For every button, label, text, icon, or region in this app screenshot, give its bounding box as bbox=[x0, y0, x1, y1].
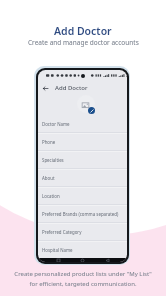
staticText: Preferred Category bbox=[42, 229, 82, 235]
button[interactable]: Phone bbox=[38, 134, 127, 152]
button[interactable]: About bbox=[38, 170, 127, 188]
staticText: Add Doctor bbox=[54, 24, 112, 38]
button[interactable]: Recents bbox=[54, 258, 63, 262]
staticText: Location bbox=[42, 193, 60, 199]
staticText: for efficient, targeted communication. bbox=[29, 280, 137, 288]
staticText: Phone bbox=[42, 139, 56, 145]
staticText: Doctor Name bbox=[42, 121, 70, 127]
button[interactable]: Doctor Name bbox=[38, 116, 127, 134]
staticText: Create personalized product lists under … bbox=[14, 270, 152, 278]
staticText: Hospital Name bbox=[42, 247, 73, 253]
button[interactable]: Preferred Category bbox=[38, 224, 127, 242]
staticText: About bbox=[42, 175, 55, 181]
button[interactable]: Back bbox=[103, 258, 112, 262]
staticText: Create and manage doctor accounts bbox=[28, 38, 139, 47]
button[interactable]: Edit photo bbox=[88, 107, 95, 114]
button[interactable]: Back bbox=[41, 84, 50, 93]
staticText: Specialties bbox=[42, 157, 64, 163]
button[interactable]: Home bbox=[78, 258, 87, 262]
staticText: Preferred Brands (comma separated) bbox=[42, 211, 119, 217]
button[interactable]: Preferred Brands (comma separated) bbox=[38, 206, 127, 224]
button[interactable]: Location bbox=[38, 188, 127, 206]
staticText: Add Doctor bbox=[55, 84, 88, 92]
button[interactable]: Specialties bbox=[38, 152, 127, 170]
button[interactable]: Hospital Name bbox=[38, 242, 127, 258]
button[interactable]: Profile photo bbox=[77, 95, 95, 113]
